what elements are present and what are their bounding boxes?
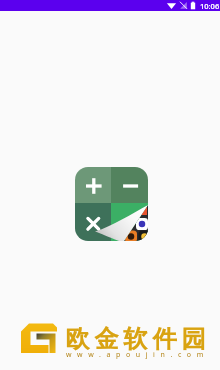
staticText: 欧金软件园 (63, 324, 208, 354)
staticText: 10:06 (200, 1, 220, 11)
button[interactable]: Calculator app icon (75, 167, 148, 241)
staticText: www.apoujin.com (66, 350, 209, 360)
